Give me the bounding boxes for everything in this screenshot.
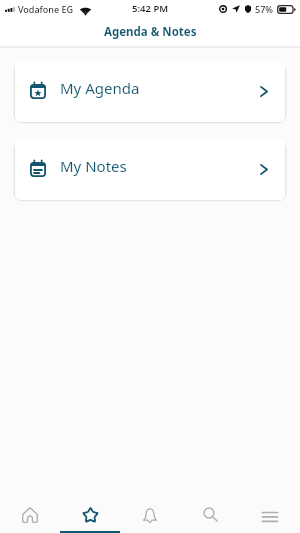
button[interactable]: Favorites <box>60 490 120 533</box>
button[interactable]: My Notes <box>15 139 285 200</box>
staticText: My Notes <box>60 156 127 176</box>
button[interactable]: Menu <box>240 490 300 533</box>
staticText: Vodafone EG <box>18 3 73 15</box>
staticText: 57% <box>255 3 273 15</box>
button[interactable]: My Agenda <box>15 61 285 122</box>
button[interactable]: Notifications <box>120 490 180 533</box>
button[interactable]: Home <box>0 490 60 533</box>
staticText: My Agenda <box>60 78 140 98</box>
staticText: Agenda & Notes <box>104 24 197 40</box>
staticText: 5:42 PM <box>132 2 169 15</box>
button[interactable]: Search <box>180 490 240 533</box>
